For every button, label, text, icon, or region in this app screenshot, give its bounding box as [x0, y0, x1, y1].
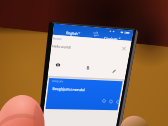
button[interactable]: Google Translate app on a phone held in …: [0, 0, 168, 126]
